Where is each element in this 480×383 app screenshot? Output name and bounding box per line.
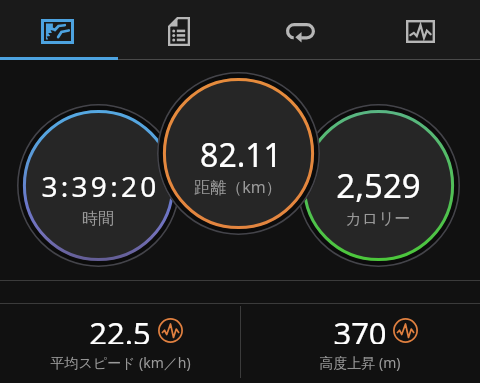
staticText: 高度上昇 (m)	[319, 353, 401, 372]
staticText: 2,529	[336, 163, 421, 208]
button[interactable]: 370	[240, 304, 480, 383]
staticText: 3:39:20	[41, 167, 160, 205]
button[interactable]: Map	[0, 0, 120, 60]
button[interactable]: Chart	[360, 0, 480, 60]
button[interactable]: Laps	[120, 0, 240, 60]
staticText: 距離（km）	[194, 176, 282, 198]
button[interactable]: 22.5	[0, 304, 240, 383]
staticText: 370	[333, 312, 387, 344]
staticText: 時間	[82, 209, 114, 229]
button[interactable]: Loop	[240, 0, 360, 60]
staticText: カロリー	[345, 209, 411, 229]
staticText: 82.11	[200, 133, 282, 177]
staticText: 平均スピード (km／h)	[50, 353, 191, 372]
staticText: 22.5	[89, 312, 151, 344]
